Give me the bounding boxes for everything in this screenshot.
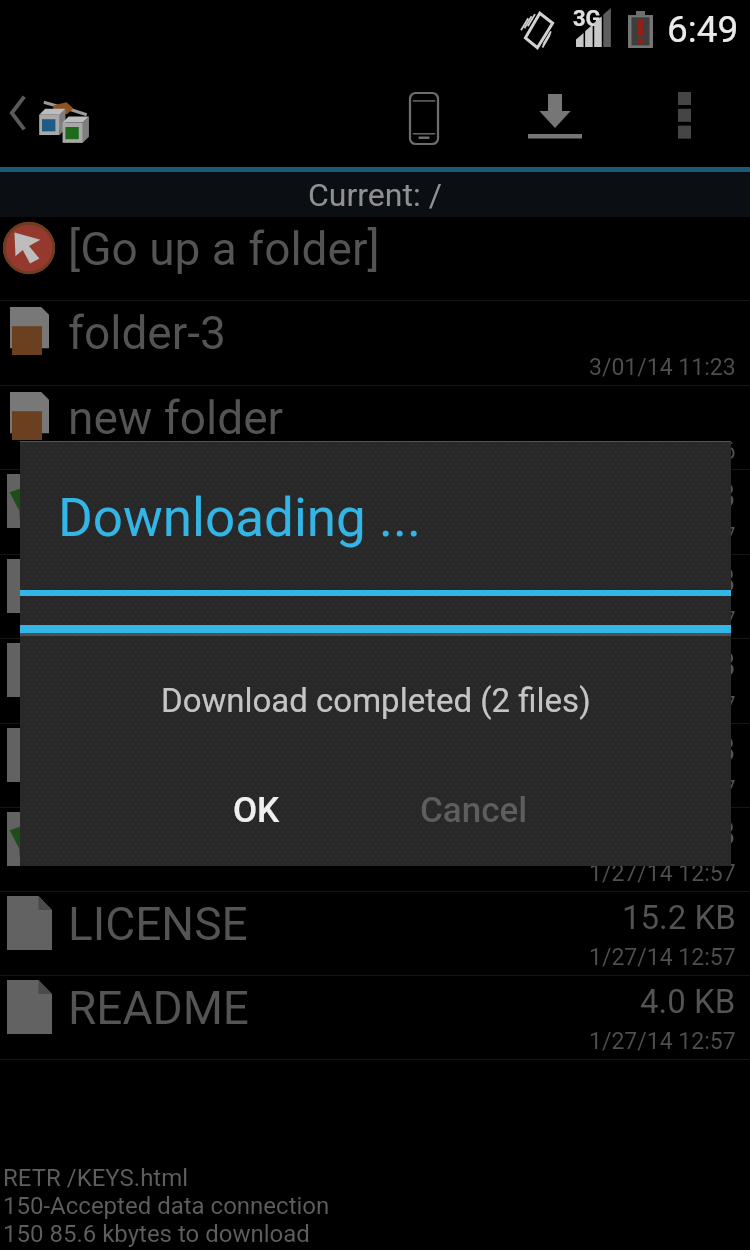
staticText: 1/27/14 12:57: [589, 523, 736, 550]
button[interactable]: new folder: [0, 386, 750, 470]
button[interactable]: CHANGES: [0, 555, 750, 639]
staticText: 4.0 KB: [640, 982, 736, 1021]
button[interactable]: folder-3: [0, 301, 750, 386]
staticText: Android.apk: [68, 475, 315, 529]
staticText: 3G: [573, 6, 601, 32]
button[interactable]: README: [0, 976, 750, 1060]
button[interactable]: More options: [648, 62, 728, 167]
staticText: 1.2 MB: [632, 561, 736, 600]
button[interactable]: Current: /: [0, 172, 750, 217]
staticText: Current: /: [308, 176, 442, 214]
staticText: 1/27/14 12:57: [589, 776, 736, 803]
staticText: README: [68, 981, 249, 1035]
staticText: 150-Accepted data connection: [3, 1192, 330, 1220]
staticText: 2.0 KB: [640, 730, 736, 769]
button[interactable]: OK: [196, 774, 316, 846]
staticText: folder-3: [68, 306, 226, 360]
staticText: 88 KB: [649, 645, 736, 684]
staticText: RETR /KEYS.html: [3, 1164, 189, 1192]
staticText: 1/28/14 13:56: [589, 438, 736, 465]
button[interactable]: KEYS.html: [0, 724, 750, 808]
staticText: INSTALL: [68, 644, 246, 698]
button[interactable]: Local device: [386, 62, 460, 167]
staticText: 1/27/14 12:57: [589, 692, 736, 719]
button[interactable]: LICENSE: [0, 892, 750, 976]
staticText: OK: [233, 790, 280, 831]
staticText: Downloading ...: [58, 487, 421, 549]
staticText: 15.2 KB: [622, 898, 736, 937]
button[interactable]: INSTALL: [0, 639, 750, 724]
staticText: LICENSE: [68, 897, 248, 951]
staticText: Cancel: [420, 790, 528, 831]
staticText: app.apk: [68, 813, 231, 867]
button[interactable]: Cancel: [394, 774, 554, 846]
staticText: 3/01/14 11:23: [589, 354, 736, 381]
button[interactable]: Navigate up: [0, 62, 110, 167]
button[interactable]: [Go up a folder]: [0, 217, 750, 301]
staticText: 1/27/14 12:57: [589, 944, 736, 971]
staticText: 1/27/14 12:57: [589, 860, 736, 887]
staticText: 6:49: [667, 8, 739, 51]
staticText: Download completed (2 files): [161, 681, 591, 720]
staticText: [Go up a folder]: [68, 222, 380, 276]
staticText: 1/27/14 12:57: [589, 607, 736, 634]
staticText: 3.4 MB: [632, 476, 736, 515]
staticText: 1/27/14 12:57: [589, 1028, 736, 1055]
button[interactable]: Android.apk: [0, 470, 750, 555]
staticText: 9.4 MB: [632, 814, 736, 853]
button[interactable]: app.apk: [0, 808, 750, 892]
staticText: CHANGES: [68, 560, 279, 614]
button[interactable]: Download: [500, 62, 610, 167]
staticText: new folder: [68, 391, 284, 445]
staticText: 150 85.6 kbytes to download: [3, 1220, 310, 1248]
